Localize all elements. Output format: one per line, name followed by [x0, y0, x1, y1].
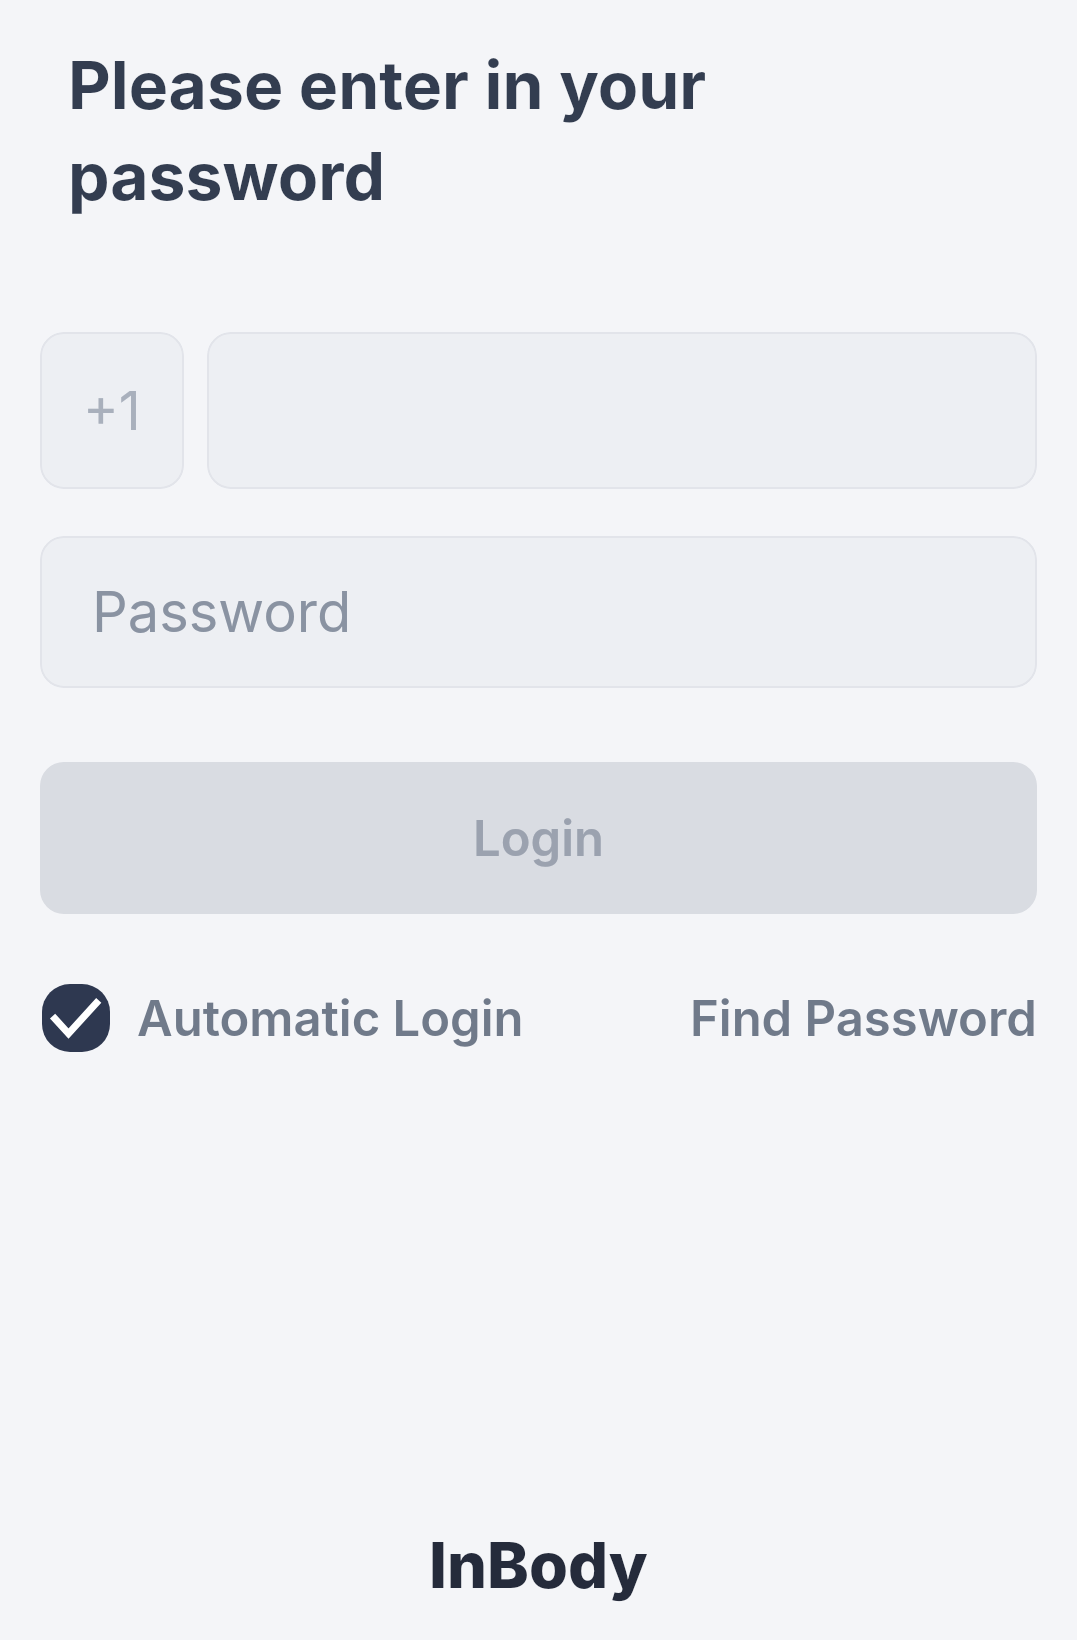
- staticText: +1: [83, 378, 141, 443]
- button[interactable]: Find Password: [690, 989, 1037, 1048]
- staticText: Please enter in your password: [68, 45, 707, 216]
- staticText: InBody: [429, 1527, 648, 1603]
- button[interactable]: Automatic Login: [40, 984, 524, 1052]
- staticText: Password: [92, 578, 352, 646]
- button[interactable]: +1: [40, 332, 184, 489]
- button[interactable]: Login: [40, 762, 1037, 914]
- button[interactable]: Password: [40, 536, 1037, 688]
- staticText: Login: [473, 809, 604, 868]
- staticText: Automatic Login: [137, 989, 524, 1048]
